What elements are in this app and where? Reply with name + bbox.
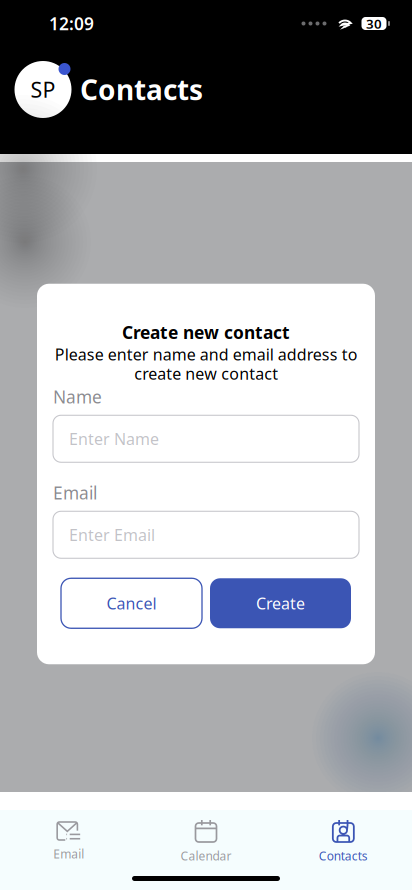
- staticText: Contacts: [80, 71, 203, 108]
- button[interactable]: Create: [210, 578, 351, 628]
- staticText: Name: [53, 385, 102, 408]
- button[interactable]: Profile: [14, 61, 72, 118]
- staticText: Cancel: [106, 593, 156, 614]
- button[interactable]: Contacts: [275, 820, 412, 864]
- staticText: Create new contact: [122, 321, 290, 344]
- staticText: SP: [30, 75, 55, 104]
- staticText: Email: [53, 481, 97, 504]
- staticText: Contacts: [319, 848, 368, 864]
- staticText: Create: [256, 593, 305, 614]
- staticText: Calendar: [180, 848, 231, 864]
- staticText: Enter Name: [69, 428, 159, 449]
- button[interactable]: Email: [0, 822, 137, 862]
- staticText: Please enter name and email address to c…: [54, 344, 357, 384]
- staticText: 12:09: [49, 12, 94, 35]
- button[interactable]: Calendar: [137, 820, 275, 864]
- staticText: 30: [366, 15, 382, 32]
- button[interactable]: Cancel: [61, 578, 202, 628]
- staticText: Email: [53, 846, 84, 862]
- staticText: Enter Email: [69, 524, 155, 545]
